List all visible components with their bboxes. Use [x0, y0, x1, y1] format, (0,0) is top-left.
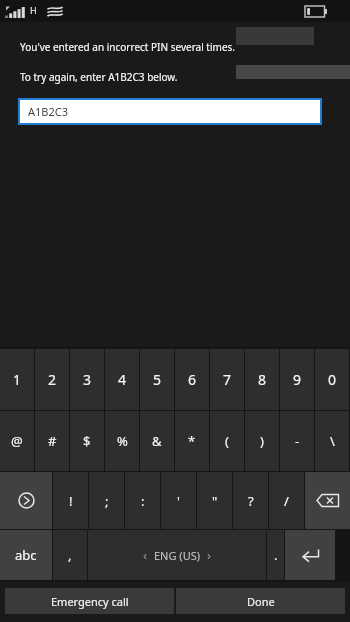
button[interactable]: . [267, 530, 284, 580]
staticText: ) [260, 432, 264, 450]
button[interactable]: / [269, 472, 304, 529]
staticText: # [48, 432, 57, 450]
button[interactable]: ' [161, 472, 196, 529]
button[interactable]: ? [233, 472, 268, 529]
staticText: ! [69, 492, 73, 510]
staticText: 6 [188, 370, 197, 389]
button[interactable]: 2 [35, 349, 69, 410]
button[interactable]: $ [70, 411, 104, 471]
button[interactable]: - [280, 411, 314, 471]
button[interactable]: # [35, 411, 69, 471]
button[interactable]: abc [0, 530, 52, 580]
staticText: 4 [118, 370, 127, 389]
button[interactable]: Emergency call [5, 588, 174, 614]
staticText: / [284, 492, 289, 510]
staticText: , [68, 546, 72, 564]
button[interactable]: ; [89, 472, 124, 529]
button[interactable]: 4 [105, 349, 139, 410]
button[interactable]: More symbols [0, 472, 52, 529]
staticText: Done [247, 594, 275, 609]
button[interactable]: @ [0, 411, 34, 471]
staticText: @ [11, 432, 23, 450]
button[interactable]: ) [245, 411, 279, 471]
staticText: ? [248, 492, 254, 510]
staticText: 7 [223, 370, 232, 389]
staticText: ' [177, 492, 180, 510]
staticText: › [207, 546, 212, 564]
button[interactable]: ! [53, 472, 88, 529]
button[interactable]: Enter [285, 530, 335, 580]
button[interactable]: 0 [315, 349, 349, 410]
staticText: ENG (US) [154, 548, 201, 563]
button[interactable]: 6 [175, 349, 209, 410]
button[interactable]: , [53, 530, 87, 580]
button[interactable]: 8 [245, 349, 279, 410]
button[interactable]: ‹ [88, 530, 266, 580]
staticText: Emergency call [51, 594, 129, 609]
button[interactable]: : [125, 472, 160, 529]
staticText: 1 [13, 370, 22, 389]
staticText: ( [225, 432, 229, 450]
staticText: ‹ [143, 546, 148, 564]
button[interactable]: 9 [280, 349, 314, 410]
staticText: abc [15, 546, 37, 564]
button[interactable]: \ [315, 411, 349, 471]
button[interactable]: ( [210, 411, 244, 471]
staticText: . [274, 546, 278, 564]
staticText: To try again, enter A1B2C3 below. [20, 70, 178, 84]
button[interactable]: Done [176, 588, 345, 614]
button[interactable]: % [105, 411, 139, 471]
button[interactable]: 7 [210, 349, 244, 410]
button[interactable]: Backspace [305, 472, 350, 529]
staticText: You've entered an incorrect PIN several … [20, 40, 236, 54]
button[interactable]: & [140, 411, 174, 471]
staticText: * [188, 432, 196, 450]
staticText: \ [330, 432, 335, 450]
staticText: 2 [48, 370, 57, 389]
staticText: H [30, 4, 37, 16]
staticText: & [152, 432, 162, 450]
staticText: A1B2C3 [28, 104, 69, 119]
staticText: 3 [83, 370, 92, 389]
button[interactable]: * [175, 411, 209, 471]
staticText: 8 [258, 370, 267, 389]
button[interactable]: 5 [140, 349, 174, 410]
staticText: 5 [153, 370, 162, 389]
button[interactable]: " [197, 472, 232, 529]
staticText: $ [83, 432, 91, 450]
staticText: ; [105, 492, 109, 510]
staticText: % [117, 432, 128, 450]
button[interactable]: A1B2C3 [18, 98, 322, 125]
button[interactable]: 3 [70, 349, 104, 410]
button[interactable]: 1 [0, 349, 34, 410]
staticText: 0 [328, 370, 337, 389]
staticText: 9 [293, 370, 302, 389]
staticText: - [295, 432, 300, 450]
staticText: : [141, 492, 145, 510]
staticText: " [212, 492, 218, 510]
